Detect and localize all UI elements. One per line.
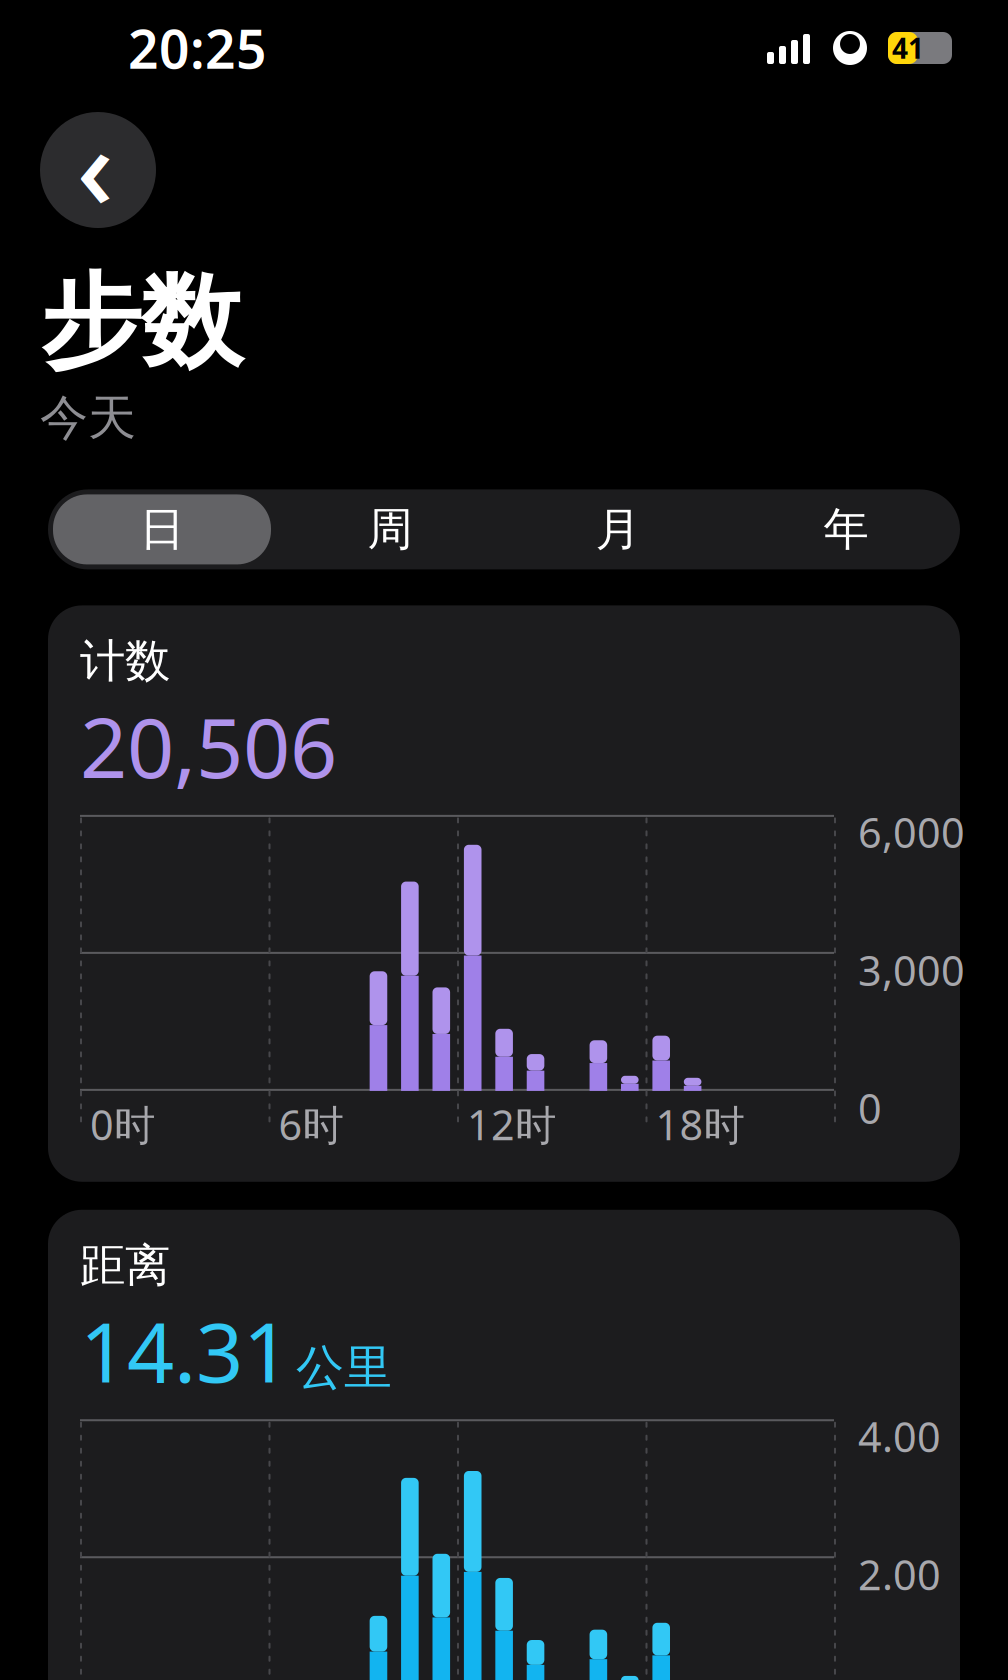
- button[interactable]: Back: [40, 112, 156, 228]
- staticText: 计数: [80, 633, 170, 689]
- staticText: 18时: [655, 1097, 744, 1152]
- staticText: 2.00: [858, 1547, 941, 1602]
- staticText: 3,000: [858, 942, 965, 997]
- button[interactable]: 周: [276, 489, 504, 569]
- staticText: 公里: [296, 1338, 392, 1397]
- staticText: 14.31: [80, 1295, 290, 1405]
- button[interactable]: 计数: [48, 605, 960, 1182]
- staticText: 0时: [90, 1097, 155, 1152]
- staticText: 12时: [467, 1097, 556, 1152]
- staticText: 20,506: [80, 691, 337, 801]
- staticText: 年: [823, 502, 868, 557]
- button[interactable]: 日: [48, 489, 276, 569]
- staticText: 0: [858, 1080, 882, 1135]
- staticText: 20:25: [128, 13, 267, 83]
- staticText: 步数: [40, 260, 242, 384]
- staticText: ‹: [76, 89, 113, 241]
- staticText: 6,000: [858, 804, 965, 859]
- button[interactable]: 月: [504, 489, 732, 569]
- button[interactable]: 距离: [48, 1210, 960, 1680]
- staticText: 日: [139, 502, 184, 557]
- staticText: 月: [595, 502, 640, 557]
- staticText: 距离: [80, 1238, 170, 1293]
- staticText: 41: [892, 29, 924, 67]
- staticText: 4.00: [858, 1409, 941, 1464]
- staticText: 今天: [40, 388, 136, 447]
- button[interactable]: 年: [732, 489, 960, 569]
- staticText: 周: [367, 502, 412, 557]
- staticText: 6时: [278, 1097, 343, 1152]
